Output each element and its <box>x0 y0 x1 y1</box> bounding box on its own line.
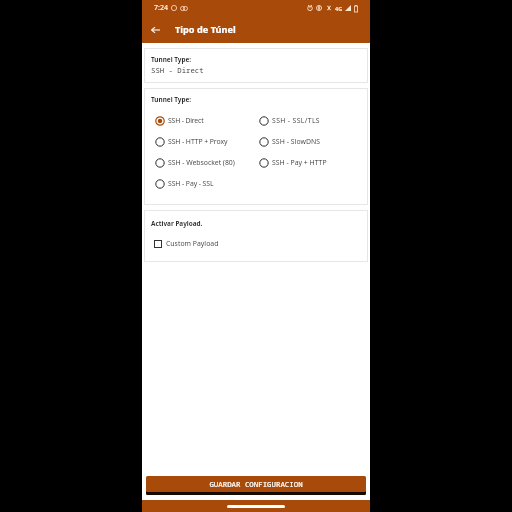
staticText: SSH - SlowDNS <box>272 137 321 146</box>
staticText: SSH - Direct <box>168 116 204 125</box>
button[interactable]: SSH - Websocket (80) <box>155 152 259 173</box>
staticText: Tunnel Type: <box>151 95 192 104</box>
staticText: Tipo de Túnel <box>175 23 236 36</box>
button[interactable]: SSH - HTTP + Proxy <box>155 131 259 152</box>
button[interactable]: Tunnel Type: <box>144 48 368 83</box>
staticText: SSH - HTTP + Proxy <box>168 137 228 146</box>
button[interactable]: SSH - Direct <box>155 110 259 131</box>
button[interactable]: SSH - SSL/TLS <box>259 110 365 131</box>
button[interactable]: GUARDAR CONFIGURACION <box>146 476 366 492</box>
staticText: SSH - Pay - SSL <box>168 179 214 188</box>
button[interactable]: Back <box>146 21 164 39</box>
staticText: SSH - Pay + HTTP <box>272 158 327 167</box>
staticText: Custom Payload <box>166 239 219 248</box>
staticText: GUARDAR CONFIGURACION <box>209 479 303 489</box>
staticText: SSH - Websocket (80) <box>168 158 235 167</box>
staticText: SSH - Direct <box>151 65 204 75</box>
button[interactable]: SSH - SlowDNS <box>259 131 365 152</box>
staticText: Tunnel Type: <box>151 55 192 64</box>
button[interactable]: SSH - Pay - SSL <box>155 173 259 194</box>
staticText: SSH - SSL/TLS <box>272 116 320 125</box>
button[interactable]: SSH - Pay + HTTP <box>259 152 365 173</box>
staticText: 7:24 <box>154 3 168 13</box>
button[interactable]: Custom Payload <box>154 239 219 248</box>
staticText: Activar Payload. <box>151 219 203 228</box>
staticText: 4G <box>335 5 343 12</box>
